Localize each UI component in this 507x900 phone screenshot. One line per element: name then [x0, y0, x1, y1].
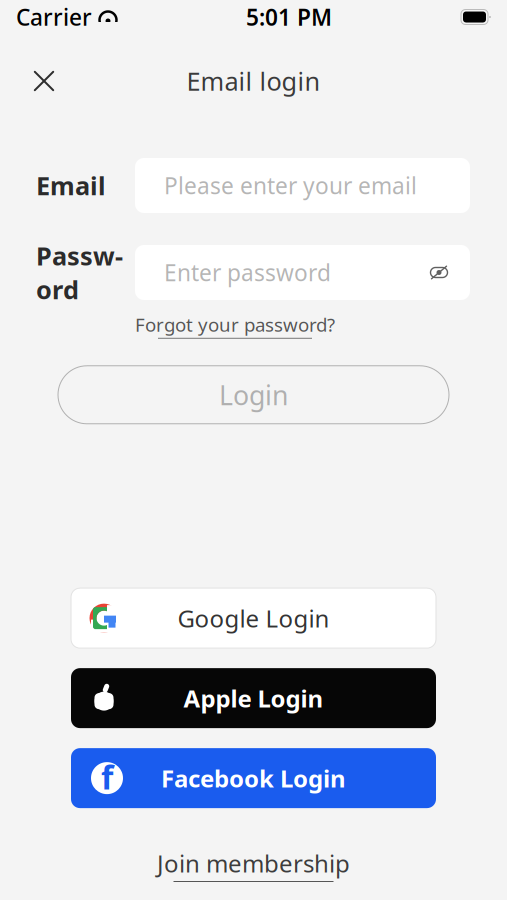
staticText: Password	[36, 239, 123, 306]
staticText: Please enter your email	[164, 170, 417, 200]
staticText: Email	[36, 169, 106, 202]
button[interactable]: f	[71, 748, 436, 808]
staticText: Enter password	[164, 257, 331, 287]
staticText: Apple Login	[183, 682, 323, 714]
button[interactable]: Show password	[424, 257, 454, 287]
button[interactable]: Join membership	[157, 847, 350, 882]
button[interactable]: Apple Login	[71, 668, 436, 728]
staticText: Facebook Login	[161, 762, 346, 794]
staticText: Forgot your password?	[135, 312, 335, 337]
staticText: Carrier	[16, 2, 92, 32]
staticText: Join membership	[157, 847, 350, 879]
button[interactable]: Login	[58, 366, 449, 424]
staticText: Google Login	[177, 602, 329, 634]
button[interactable]: Google Login	[71, 588, 436, 648]
button[interactable]: Close	[22, 59, 66, 103]
staticText: Login	[219, 377, 288, 412]
staticText: Email login	[186, 64, 320, 98]
staticText: 5:01 PM	[246, 2, 332, 32]
staticText: f	[101, 756, 113, 798]
button[interactable]: Forgot your password?	[135, 312, 335, 339]
